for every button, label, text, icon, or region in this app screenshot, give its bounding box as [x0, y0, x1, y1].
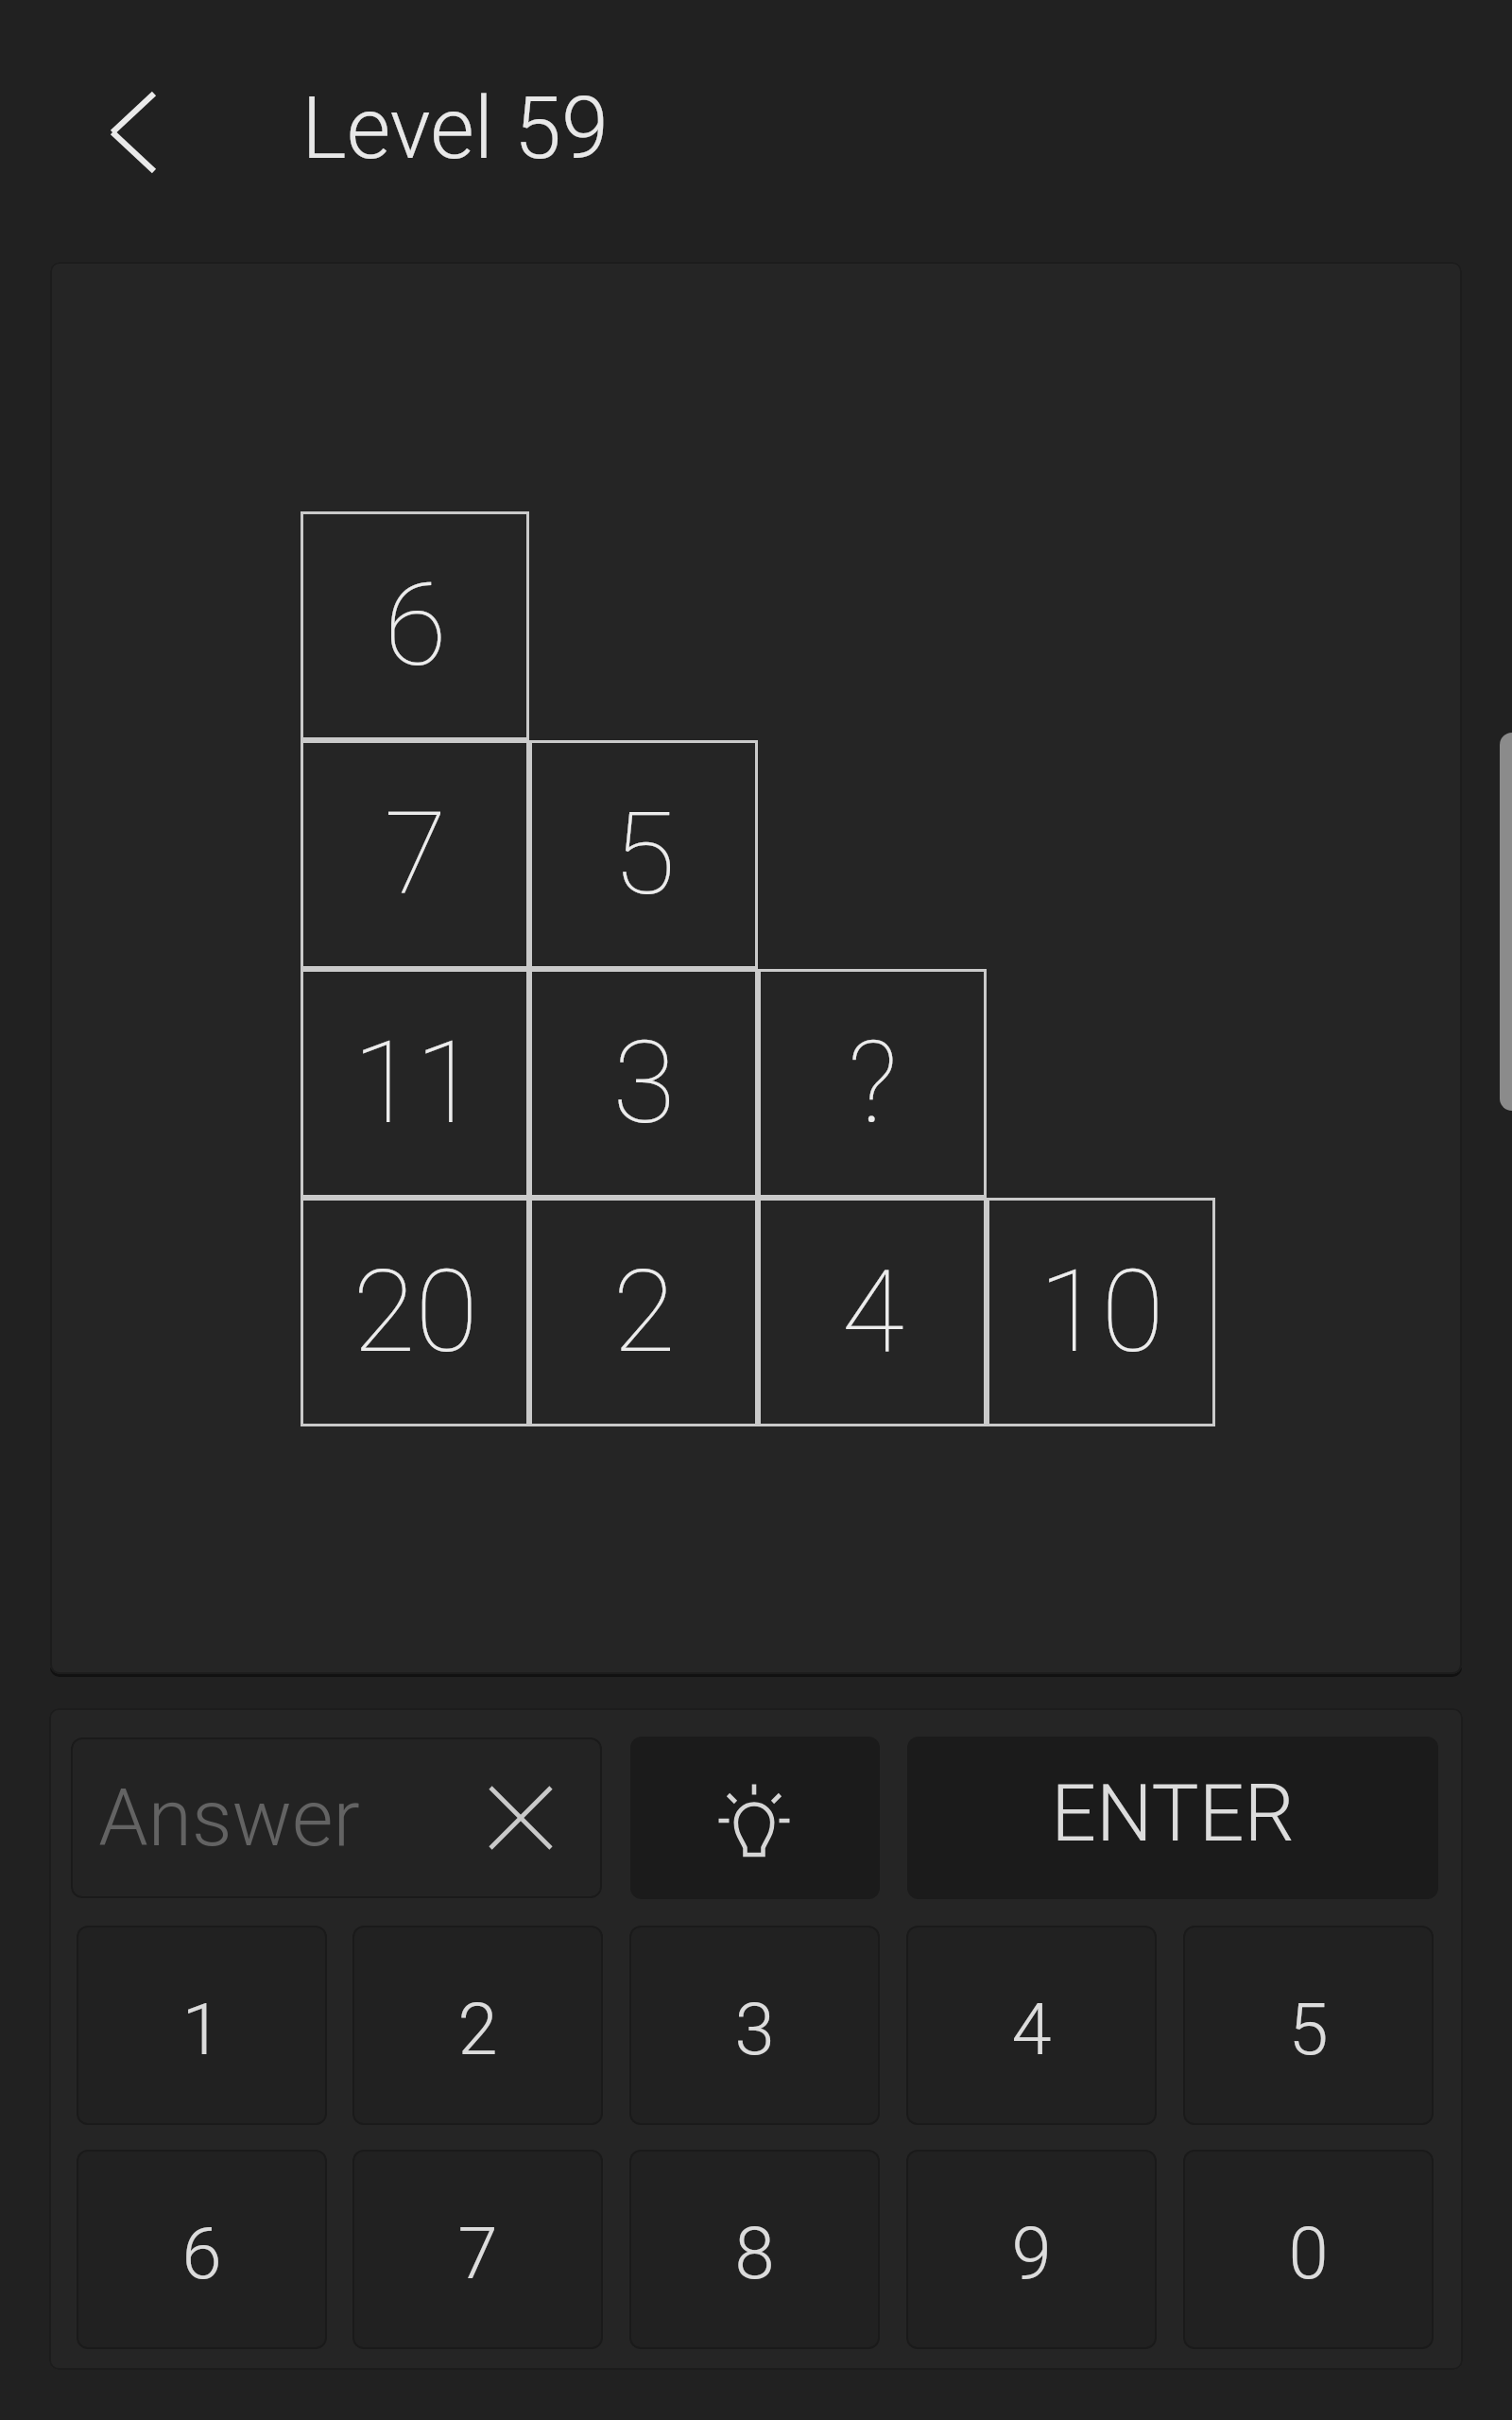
button[interactable]: 3 — [529, 969, 758, 1198]
staticText: ENTER — [1051, 1767, 1295, 1859]
staticText: 10 — [1039, 1245, 1164, 1379]
button[interactable]: 8 — [629, 2150, 880, 2349]
staticText: 7 — [457, 2211, 498, 2295]
button[interactable]: 2 — [529, 1198, 758, 1426]
staticText: 3 — [612, 1016, 676, 1150]
staticText: 20 — [352, 1245, 478, 1379]
button[interactable]: 5 — [529, 740, 758, 969]
button[interactable]: Clear answer — [469, 1766, 573, 1870]
button[interactable]: 4 — [758, 1198, 987, 1426]
staticText: 0 — [1288, 2211, 1329, 2295]
button[interactable]: 2 — [352, 1926, 603, 2125]
button[interactable]: 7 — [301, 740, 529, 969]
staticText: 9 — [1011, 2211, 1052, 2295]
staticText: 1 — [181, 1987, 222, 2071]
button[interactable]: ? — [758, 969, 987, 1198]
staticText: 11 — [352, 1016, 478, 1150]
button[interactable]: 7 — [352, 2150, 603, 2349]
button[interactable]: Answer — [71, 1737, 602, 1898]
button[interactable]: 1 — [77, 1926, 327, 2125]
button[interactable]: 6 — [301, 511, 529, 740]
staticText: 8 — [734, 2211, 775, 2295]
button[interactable]: 6 — [77, 2150, 327, 2349]
staticText: ? — [848, 1016, 898, 1150]
staticText: 2 — [612, 1245, 676, 1379]
button[interactable]: 20 — [301, 1198, 529, 1426]
button[interactable]: 5 — [1183, 1926, 1434, 2125]
staticText: 7 — [384, 787, 447, 922]
button[interactable]: Hint — [630, 1737, 880, 1899]
button[interactable]: 4 — [906, 1926, 1157, 2125]
staticText: 2 — [457, 1987, 498, 2071]
staticText: 6 — [384, 559, 447, 693]
staticText: 6 — [181, 2211, 222, 2295]
button[interactable]: 11 — [301, 969, 529, 1198]
staticText: 5 — [1288, 1987, 1329, 2071]
button[interactable]: Back — [68, 76, 197, 189]
staticText: 4 — [841, 1245, 904, 1379]
button[interactable]: 0 — [1183, 2150, 1434, 2349]
staticText: 4 — [1011, 1987, 1052, 2071]
staticText: 5 — [612, 787, 676, 922]
button[interactable]: ENTER — [907, 1737, 1438, 1899]
button[interactable]: 10 — [987, 1198, 1215, 1426]
staticText: Level 59 — [301, 79, 609, 179]
staticText: Answer — [98, 1772, 360, 1864]
button[interactable]: 3 — [629, 1926, 880, 2125]
staticText: 3 — [734, 1987, 775, 2071]
button[interactable]: 9 — [906, 2150, 1157, 2349]
